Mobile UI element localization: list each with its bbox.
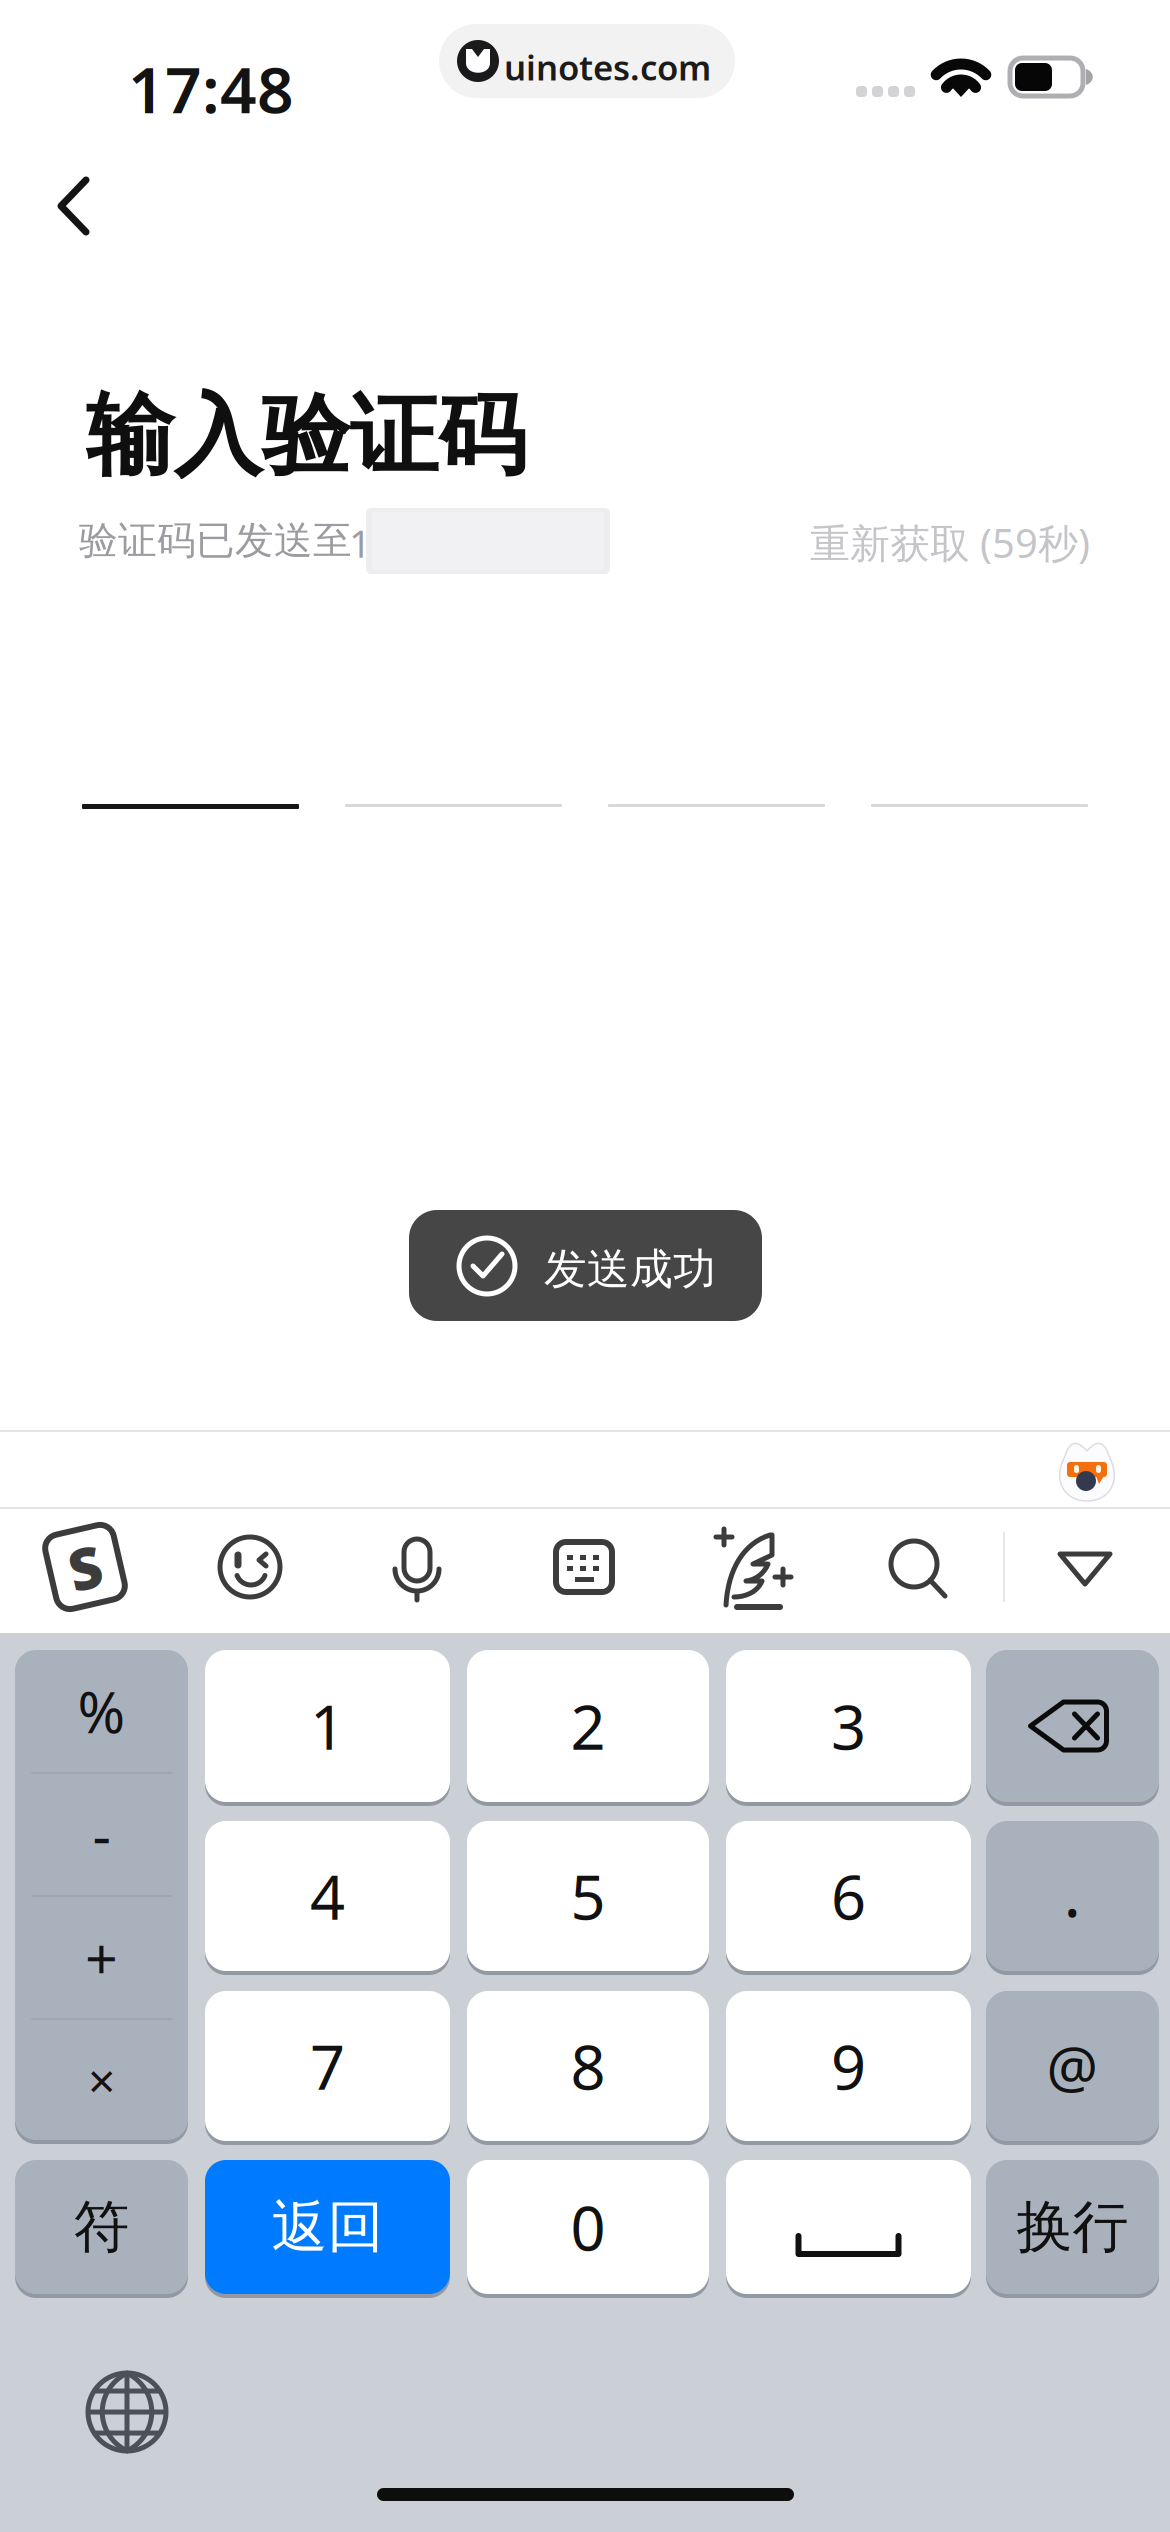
staticText: 发送成功 xyxy=(544,1243,716,1295)
staticText: 5 xyxy=(570,1855,605,1937)
staticText: S xyxy=(68,1529,101,1605)
button[interactable]: Verification digit 4 xyxy=(0,0,217,130)
staticText: 3 xyxy=(831,1685,866,1767)
staticText: % xyxy=(77,1673,125,1749)
button[interactable]: 1 xyxy=(0,0,245,152)
staticText: 符 xyxy=(73,2193,129,2261)
staticText: 2 xyxy=(570,1685,605,1767)
button[interactable]: 重新获取 (59秒) xyxy=(0,0,330,86)
button[interactable]: Delete xyxy=(0,0,173,152)
button[interactable]: 5 xyxy=(0,0,242,150)
staticText: uinotes.com xyxy=(504,44,711,90)
staticText: 1 xyxy=(349,517,371,568)
staticText: 17:48 xyxy=(128,46,294,131)
button[interactable]: At sign xyxy=(0,0,173,150)
button[interactable]: 7 xyxy=(0,0,245,150)
button[interactable]: 9 xyxy=(0,0,245,150)
staticText: 输入验证码 xyxy=(86,382,526,490)
staticText: 返回 xyxy=(271,2193,383,2261)
staticText: 0 xyxy=(570,2186,605,2268)
staticText: × xyxy=(88,2048,115,2112)
staticText: 验证码已发送至 xyxy=(79,517,352,564)
staticText: 8 xyxy=(570,2025,605,2107)
staticText: 6 xyxy=(831,1855,866,1937)
button[interactable]: 6 xyxy=(0,0,245,150)
button[interactable]: 4 xyxy=(0,0,245,150)
button[interactable]: Verification digit 1 xyxy=(0,0,217,130)
button[interactable]: Operators xyxy=(0,0,173,490)
button[interactable]: 返回 xyxy=(0,0,245,134)
staticText: - xyxy=(92,1796,110,1872)
button[interactable]: 符 xyxy=(0,0,173,134)
staticText: 换行 xyxy=(1016,2193,1128,2261)
staticText: . xyxy=(1063,1849,1081,1935)
button[interactable]: 3 xyxy=(0,0,245,152)
button[interactable]: 8 xyxy=(0,0,242,150)
button[interactable]: Space xyxy=(0,0,245,134)
staticText: + xyxy=(85,1919,118,1995)
staticText: 重新获取 (59秒) xyxy=(810,516,1090,569)
button[interactable]: 换行 xyxy=(0,0,173,134)
button[interactable]: Decimal point xyxy=(0,0,173,150)
button[interactable]: 0 xyxy=(0,0,242,134)
staticText: 7 xyxy=(310,2025,345,2107)
staticText: 9 xyxy=(831,2025,866,2107)
button[interactable]: Verification digit 2 xyxy=(0,0,217,130)
button[interactable]: Verification digit 3 xyxy=(0,0,217,130)
staticText: 1 xyxy=(310,1685,345,1767)
button[interactable]: 2 xyxy=(0,0,242,152)
staticText: 4 xyxy=(310,1855,345,1937)
staticText: @ xyxy=(1046,2028,1098,2104)
